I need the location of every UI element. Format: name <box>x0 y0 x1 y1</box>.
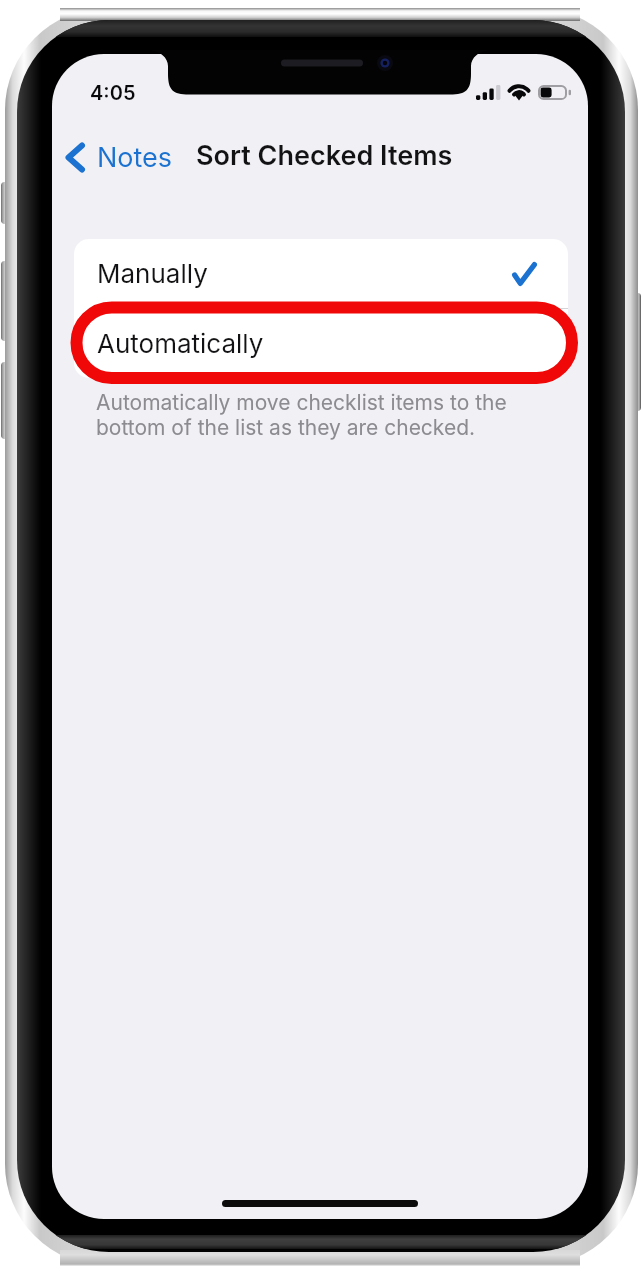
staticText: 4:05 <box>90 81 136 105</box>
button[interactable]: Manually <box>74 239 568 308</box>
other: Selected <box>512 262 537 286</box>
button[interactable]: Automatically <box>74 309 568 378</box>
staticText: Notes <box>97 141 173 174</box>
other: Cellular signal <box>476 85 499 100</box>
button[interactable]: Back to Notes <box>57 133 181 182</box>
other: Back to Notes <box>65 142 85 173</box>
staticText: Automatically <box>97 328 264 359</box>
staticText: Automatically move checklist items to th… <box>96 390 507 440</box>
other: Wi-Fi <box>508 84 530 100</box>
staticText: Sort Checked Items <box>196 139 453 172</box>
other: Battery <box>538 85 571 100</box>
staticText: Manually <box>97 258 208 289</box>
